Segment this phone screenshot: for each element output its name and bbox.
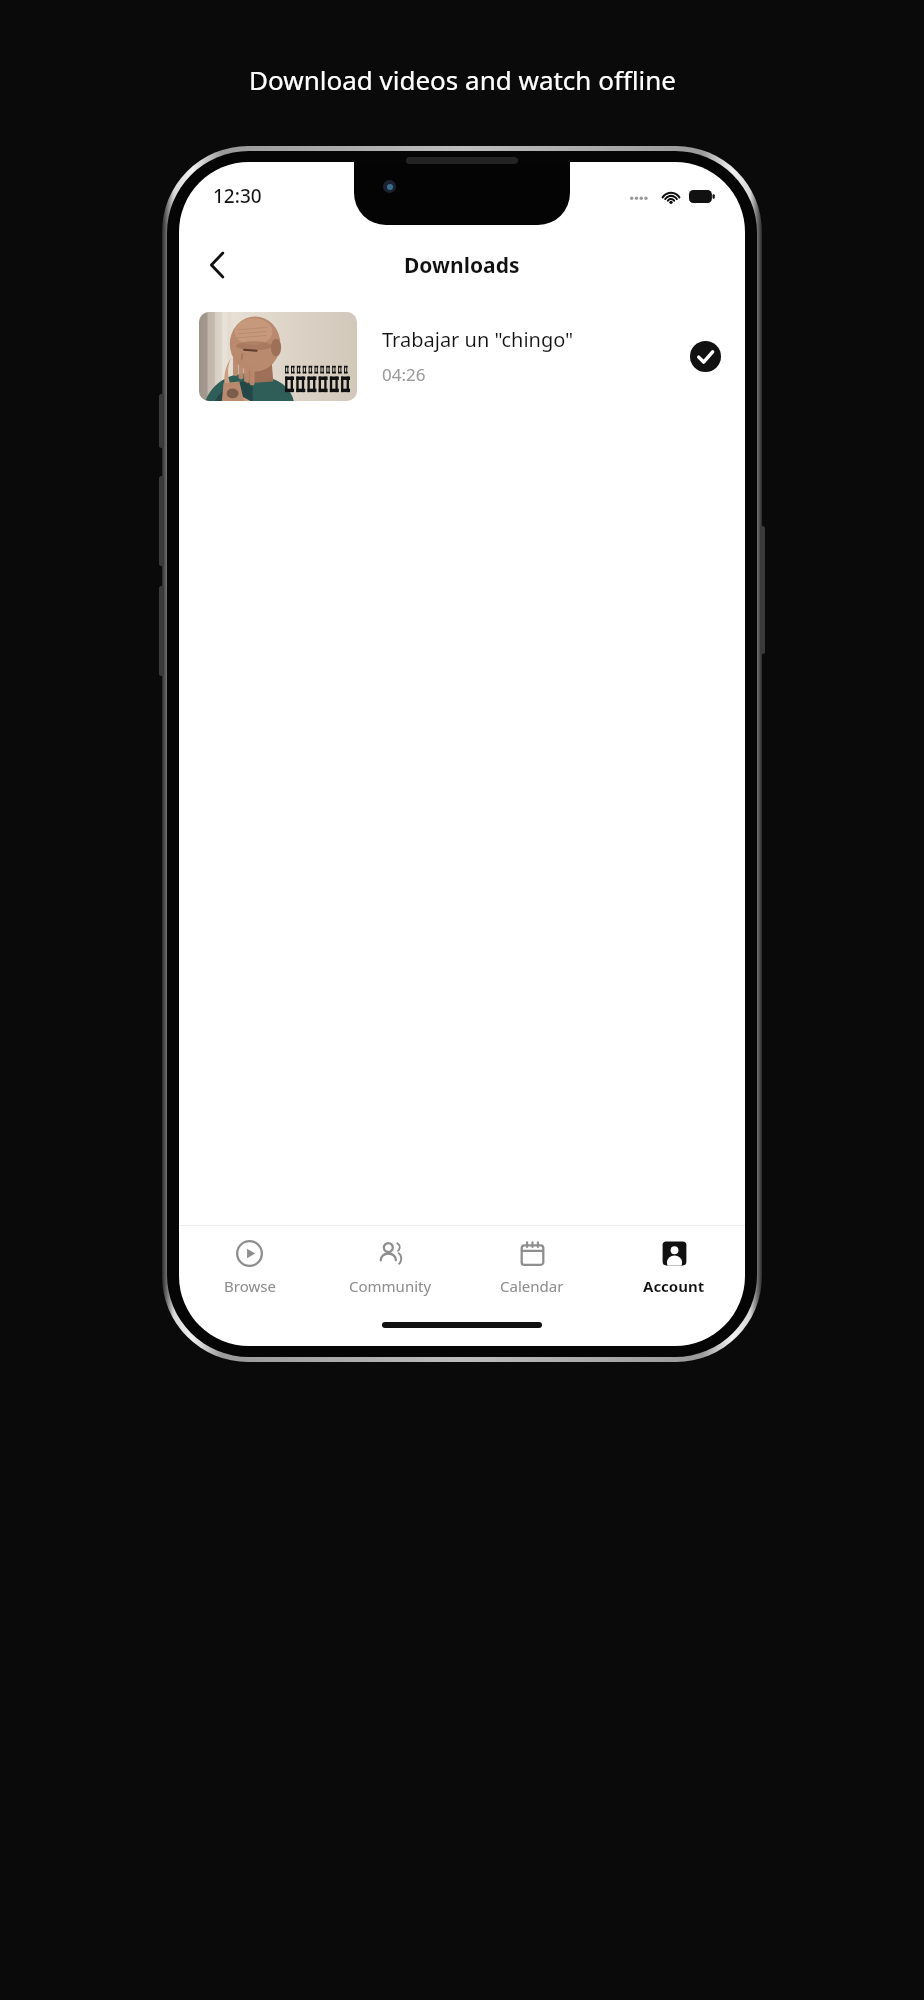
staticText: Account [643, 1276, 705, 1296]
button[interactable]: Browse [179, 1226, 320, 1312]
button[interactable]: Back [193, 241, 241, 289]
staticText: Downloads [404, 251, 520, 280]
staticText: Community [349, 1276, 432, 1296]
button[interactable]: Downloaded [685, 336, 725, 376]
staticText: Download videos and watch offline [249, 62, 676, 97]
button[interactable]: Account [603, 1226, 745, 1312]
staticText: 12:30 [213, 183, 262, 209]
button[interactable]: Calendar [461, 1226, 603, 1312]
staticText: Browse [224, 1276, 276, 1296]
button[interactable]: Trabajar un "chingo" [179, 304, 745, 408]
staticText: Calendar [500, 1276, 564, 1296]
staticText: 04:26 [382, 363, 426, 386]
staticText: Trabajar un "chingo" [382, 326, 574, 353]
button[interactable]: Community [320, 1226, 461, 1312]
